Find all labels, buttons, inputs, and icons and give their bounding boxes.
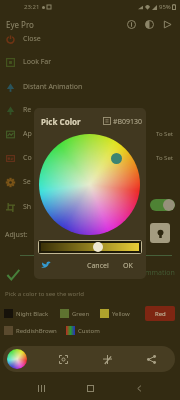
staticText: Sh: [23, 202, 32, 212]
button[interactable]: Night Black: [4, 309, 49, 318]
button[interactable]: Share: [143, 351, 159, 367]
button[interactable]: Home: [82, 380, 98, 396]
button[interactable]: Cancel: [87, 261, 109, 271]
button[interactable]: Focus: [55, 351, 71, 367]
staticText: Se: [23, 177, 31, 187]
button[interactable]: Brightness: [150, 223, 170, 243]
staticText: Distant Animation: [23, 82, 83, 92]
button[interactable]: ReddishBrown: [4, 326, 57, 335]
button[interactable]: Ap: [0, 124, 180, 144]
staticText: Look Far: [23, 57, 52, 67]
staticText: ReddishBrown: [16, 327, 57, 335]
button[interactable]: Co: [0, 148, 180, 168]
button[interactable]: Color wheel: [6, 348, 28, 370]
staticText: #B09130: [113, 117, 143, 127]
button[interactable]: Contrast: [142, 17, 156, 31]
staticText: 95%: [159, 3, 171, 11]
button[interactable]: Se: [0, 172, 180, 192]
staticText: Red: [155, 310, 166, 318]
staticText: Co: [23, 153, 32, 163]
staticText: To Set: [156, 154, 173, 162]
staticText: Close: [23, 34, 41, 44]
staticText: mmation: [145, 268, 175, 278]
button[interactable]: Edit: [99, 351, 115, 367]
staticText: Pick Color: [41, 116, 81, 127]
button[interactable]: Look Far: [0, 52, 180, 72]
staticText: Eye Pro: [6, 19, 34, 30]
button[interactable]: Brightness slider: [41, 243, 139, 251]
staticText: Pick a color to see the world: [5, 290, 84, 298]
button[interactable]: Yellow: [100, 309, 130, 318]
button[interactable]: Red: [145, 306, 175, 321]
button[interactable]: Close: [0, 29, 180, 49]
staticText: Re: [23, 105, 32, 115]
button[interactable]: OK: [123, 261, 133, 271]
button[interactable]: Toggle: [150, 199, 175, 211]
staticText: Green: [72, 310, 90, 318]
staticText: Ap: [23, 129, 32, 139]
button[interactable]: Back: [131, 380, 147, 396]
button[interactable]: Info: [124, 17, 138, 31]
button[interactable]: Green: [60, 309, 90, 318]
staticText: Custom: [78, 327, 100, 335]
button[interactable]: Distant Animation: [0, 77, 180, 97]
staticText: Adjust:: [5, 230, 28, 240]
staticText: Night Black: [16, 310, 49, 318]
button[interactable]: Re: [0, 100, 180, 120]
staticText: To Set: [156, 130, 173, 138]
staticText: 23:21: [24, 3, 40, 11]
button[interactable]: Play: [160, 17, 174, 31]
button[interactable]: Custom: [66, 326, 100, 335]
button[interactable]: Sh: [0, 197, 180, 217]
staticText: Yellow: [112, 310, 130, 318]
button[interactable]: Recents: [33, 380, 49, 396]
